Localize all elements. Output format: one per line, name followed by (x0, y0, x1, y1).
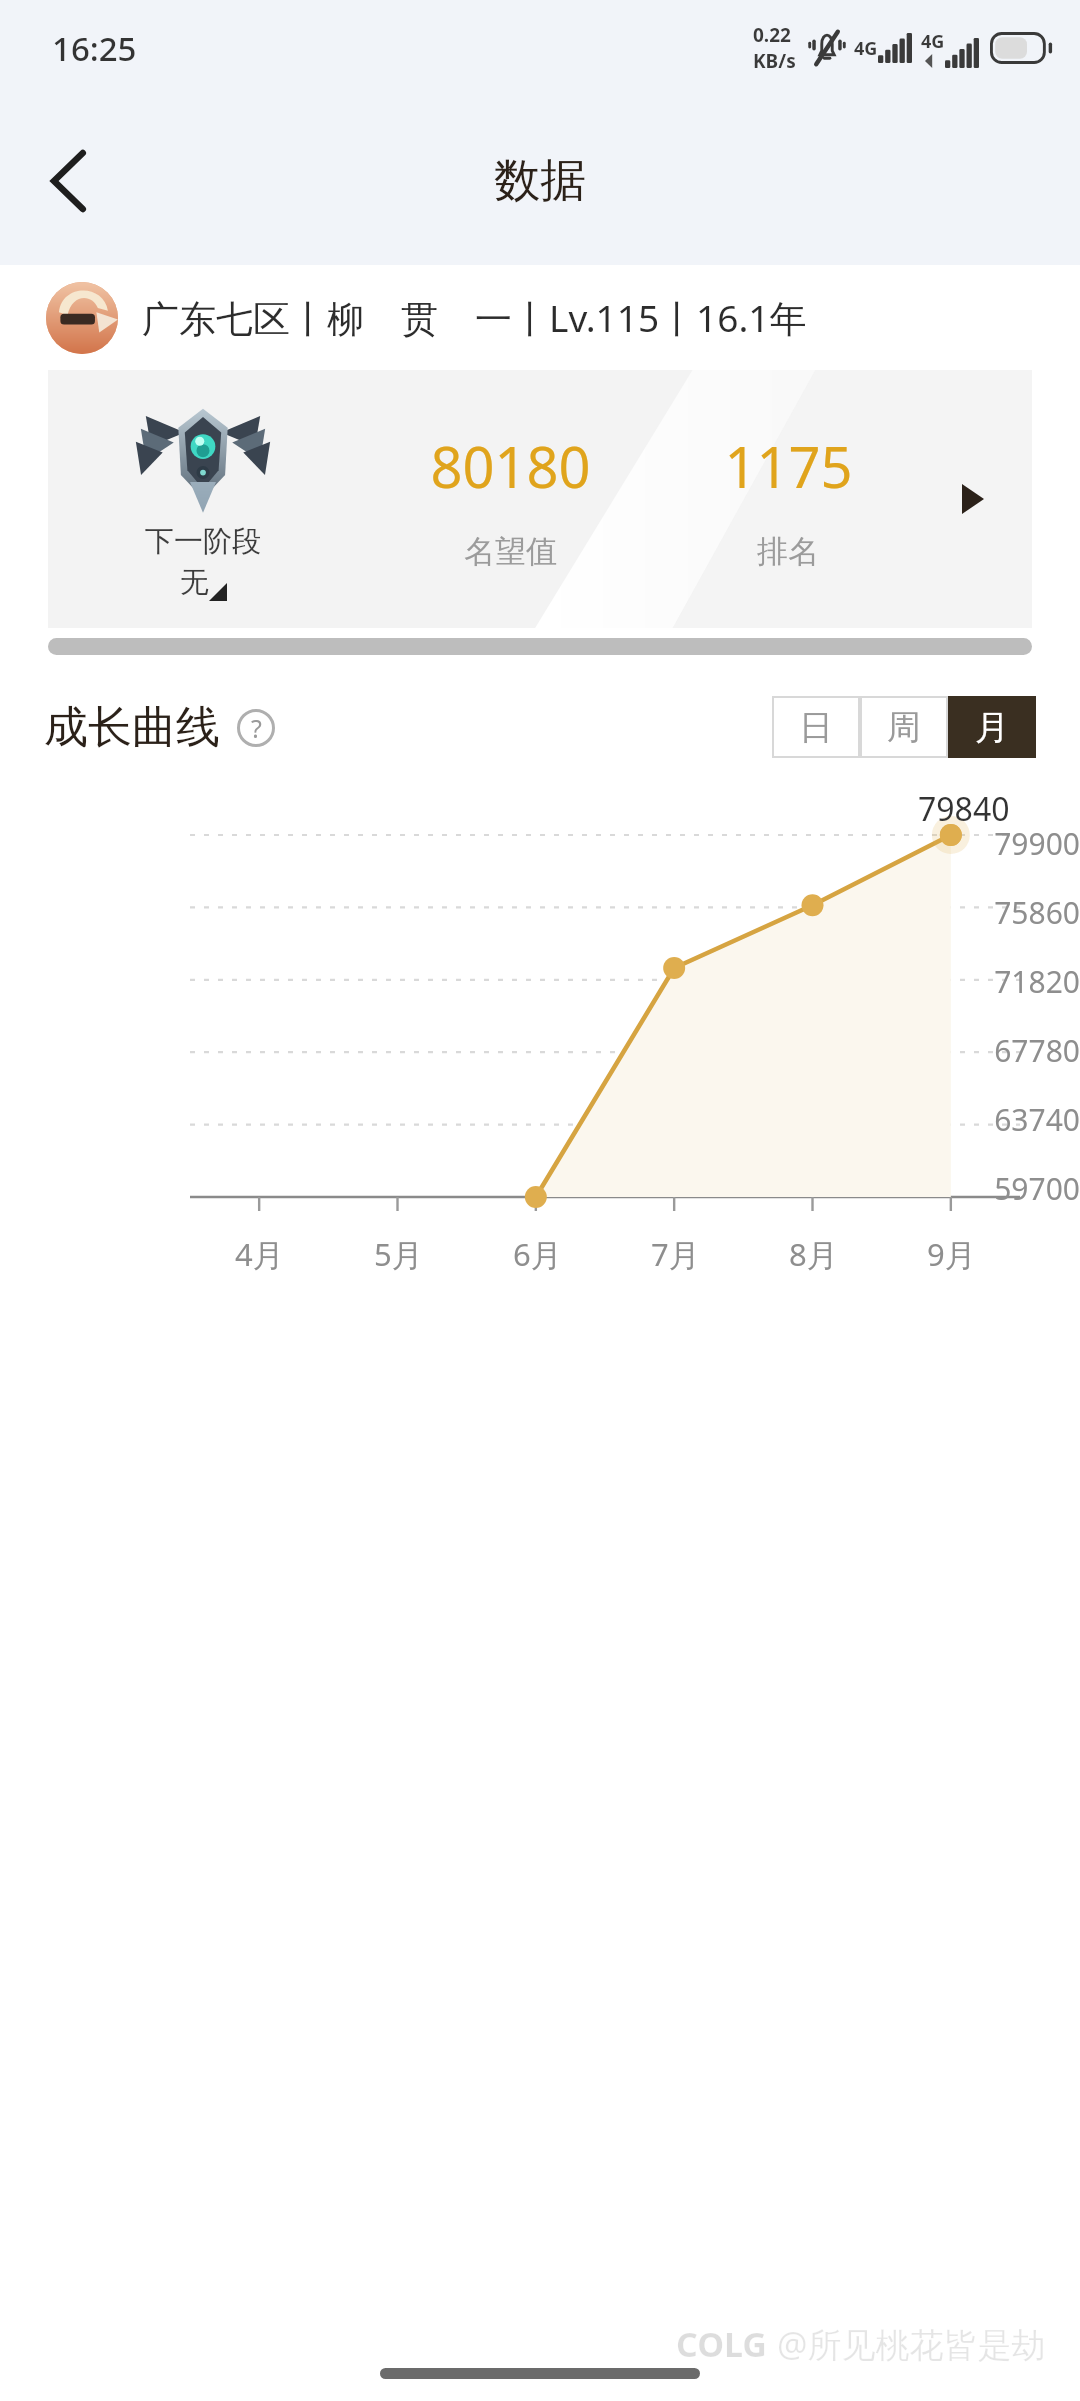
staticText: 59700 (994, 1168, 1080, 1209)
staticText: 月 (975, 706, 1009, 749)
staticText: 80180 (430, 428, 591, 504)
button[interactable]: 日 (772, 696, 860, 758)
staticText: 6月 (513, 1233, 562, 1275)
staticText: 数据 (494, 152, 586, 210)
staticText: COLG (676, 2321, 767, 2367)
staticText: 1175 (724, 428, 853, 504)
staticText: 79840 (918, 787, 1010, 831)
staticText: 67780 (994, 1030, 1080, 1071)
staticText: 63740 (994, 1099, 1080, 1140)
staticText: 4月 (235, 1233, 284, 1275)
button[interactable]: 下一阶段 (48, 370, 1032, 628)
staticText: 9月 (927, 1233, 976, 1275)
button[interactable]: 月 (948, 696, 1036, 758)
staticText: 75860 (994, 892, 1080, 933)
staticText: 5月 (374, 1233, 423, 1275)
staticText: KB/s (753, 48, 796, 74)
staticText: 16:25 (52, 26, 137, 71)
staticText: 4G (854, 36, 878, 61)
staticText: 0.22 (753, 22, 791, 48)
button[interactable]: 周 (860, 696, 948, 758)
button[interactable]: 广东七区丨柳 贯 一丨Lv.115丨16.1年 (0, 265, 1080, 370)
staticText: 名望值 (464, 532, 557, 571)
staticText: 日 (799, 706, 833, 749)
staticText: ? (251, 711, 262, 745)
staticText: 71820 (994, 961, 1080, 1002)
staticText: 成长曲线 (44, 700, 220, 755)
staticText: 无 (180, 564, 209, 601)
staticText: 4G (921, 29, 945, 54)
button[interactable]: Back (22, 133, 118, 229)
button[interactable]: Help (236, 708, 276, 748)
button[interactable]: More (913, 370, 1032, 628)
staticText: @所见桃花皆是劫 (777, 2321, 1046, 2367)
staticText: 7月 (651, 1233, 700, 1275)
staticText: 广东七区丨柳 贯 一丨Lv.115丨16.1年 (142, 292, 807, 343)
staticText: 79900 (994, 823, 1080, 864)
staticText: 8月 (789, 1233, 838, 1275)
staticText: 下一阶段 (145, 523, 261, 560)
staticText: 周 (887, 706, 921, 749)
staticText: 排名 (757, 532, 819, 571)
